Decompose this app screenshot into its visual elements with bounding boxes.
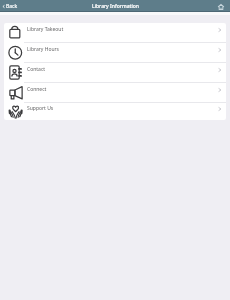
- button[interactable]: Library Hours: [4, 43, 226, 62]
- staticText: Contact: [27, 66, 46, 73]
- button[interactable]: Connect: [4, 83, 226, 102]
- staticText: Library Hours: [27, 46, 59, 53]
- button[interactable]: Support Us: [4, 103, 226, 120]
- staticText: Library Takeout: [27, 26, 64, 33]
- button[interactable]: Home: [216, 2, 225, 11]
- staticText: Back: [6, 3, 18, 10]
- staticText: Connect: [27, 86, 47, 93]
- staticText: Library Information: [92, 3, 139, 10]
- button[interactable]: Library Takeout: [4, 23, 226, 42]
- staticText: Support Us: [27, 105, 54, 112]
- button[interactable]: Contact: [4, 63, 226, 82]
- button[interactable]: Back: [1, 2, 19, 11]
